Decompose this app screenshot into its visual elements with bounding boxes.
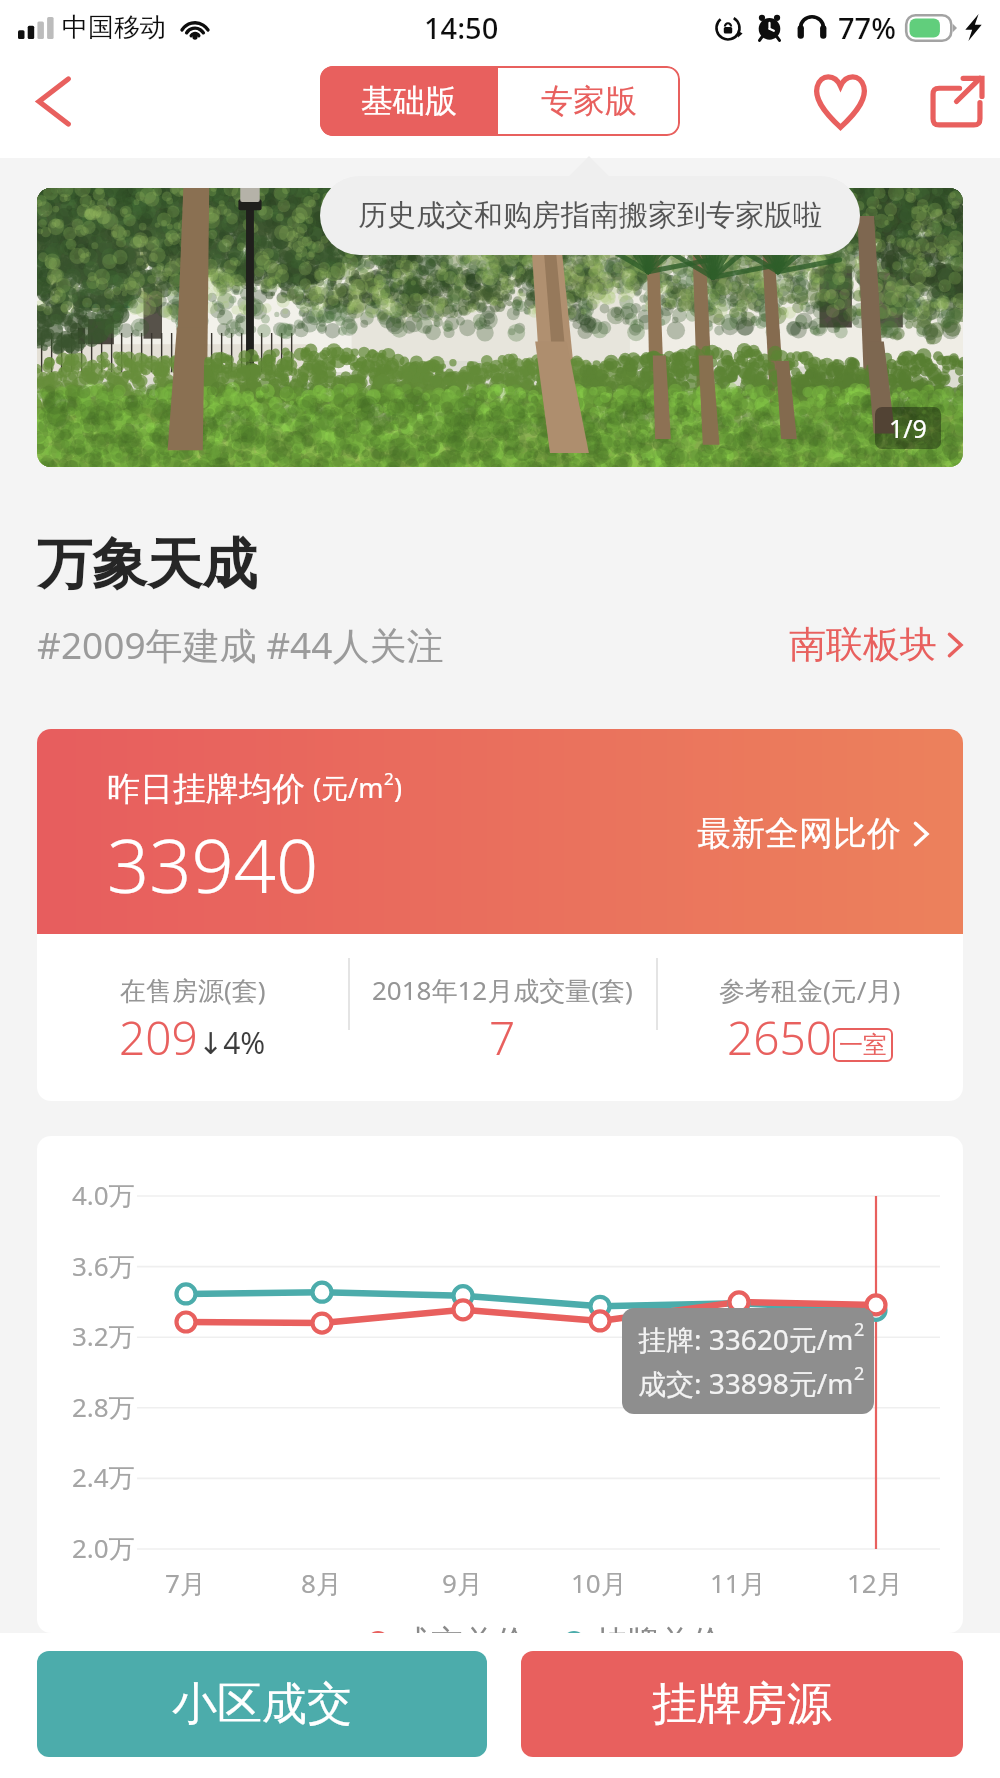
button[interactable]: 小区成交 <box>37 1651 487 1757</box>
staticText: 一室 <box>839 1030 887 1060</box>
staticText: 最新全网比价 <box>697 812 901 855</box>
staticText: 2.8万 <box>72 1389 135 1425</box>
button[interactable]: 专家版 <box>498 66 680 136</box>
staticText: 7月 <box>165 1565 206 1601</box>
staticText: 77% <box>838 8 896 47</box>
staticText: 209 <box>119 1006 198 1069</box>
staticText: 昨日挂牌均价 <box>107 768 305 810</box>
staticText: 2018年12月成交量(套) <box>372 972 633 1008</box>
staticText: 2 <box>384 767 394 790</box>
staticText: 成交单价 <box>399 1622 527 1662</box>
staticText: 3.6万 <box>72 1248 135 1284</box>
staticText: ↓4% <box>198 1022 266 1063</box>
staticText: 基础版 <box>361 81 457 121</box>
button[interactable]: Share <box>918 63 994 139</box>
staticText: 挂牌单价 <box>595 1622 723 1662</box>
staticText: 8月 <box>301 1565 342 1601</box>
staticText: 14:50 <box>424 8 499 47</box>
staticText: 7 <box>489 1006 516 1069</box>
staticText: 参考租金(元/月) <box>719 972 901 1008</box>
staticText: 成交: 33898元/m <box>638 1364 854 1402</box>
staticText: 4.0万 <box>72 1177 135 1213</box>
staticText: #2009年建成 #44人关注 <box>37 619 444 670</box>
staticText: 3.2万 <box>72 1318 135 1354</box>
staticText: 在售房源(套) <box>120 972 266 1008</box>
button[interactable]: 挂牌房源 <box>521 1651 963 1757</box>
staticText: 挂牌: 33620元/m <box>638 1320 854 1358</box>
staticText: 10月 <box>571 1565 627 1601</box>
staticText: 历史成交和购房指南搬家到专家版啦 <box>358 197 822 234</box>
staticText: 9月 <box>442 1565 483 1601</box>
staticText: 2 <box>854 1317 865 1342</box>
staticText: 11月 <box>710 1565 766 1601</box>
button[interactable]: 1/9 <box>37 188 963 467</box>
staticText: 12月 <box>847 1565 903 1601</box>
staticText: ) <box>394 769 403 806</box>
staticText: 33940 <box>107 814 319 915</box>
staticText: 小区成交 <box>172 1676 352 1733</box>
staticText: 南联板块 <box>789 621 937 668</box>
staticText: 万象天成 <box>37 530 257 599</box>
staticText: 专家版 <box>541 81 637 121</box>
staticText: 2.4万 <box>72 1459 135 1495</box>
staticText: 1/9 <box>889 411 927 445</box>
staticText: 2 <box>854 1361 865 1386</box>
staticText: 中国移动 <box>62 11 166 44</box>
button[interactable]: Back <box>16 63 92 139</box>
button[interactable]: 最新全网比价 <box>697 812 929 855</box>
button[interactable]: Favorite <box>802 63 878 139</box>
staticText: 挂牌房源 <box>652 1676 832 1733</box>
button[interactable]: 基础版 <box>320 66 498 136</box>
staticText: (元/m <box>313 769 384 806</box>
staticText: 2.0万 <box>72 1530 135 1566</box>
button[interactable]: 南联板块 <box>789 621 963 668</box>
staticText: 2650 <box>727 1006 833 1069</box>
